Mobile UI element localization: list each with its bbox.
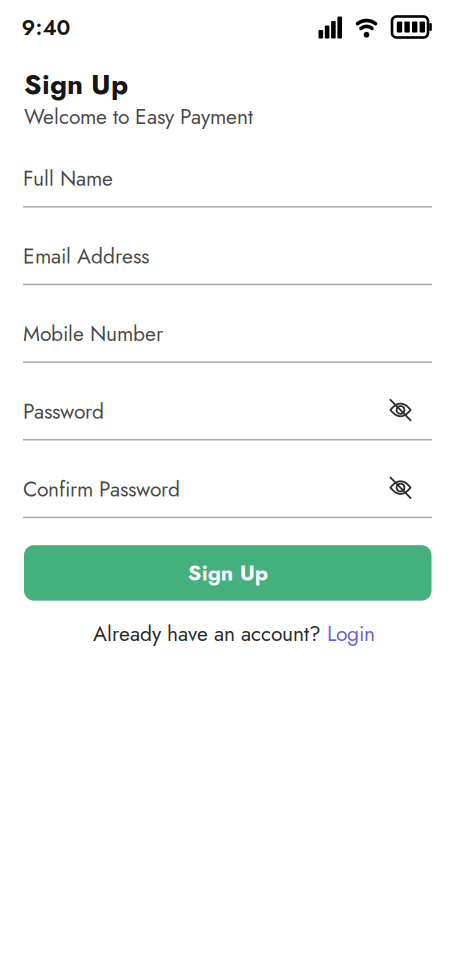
button[interactable]: Show password <box>390 401 411 422</box>
button[interactable]: Mobile Number <box>23 319 432 349</box>
staticText: Login <box>327 618 375 649</box>
button[interactable]: Login <box>327 618 375 649</box>
staticText: Welcome to Easy Payment <box>24 101 253 132</box>
staticText: Sign Up <box>24 64 128 104</box>
button[interactable]: Show confirm password <box>390 478 411 500</box>
button[interactable]: Confirm Password <box>23 474 390 504</box>
staticText: Password <box>23 396 104 427</box>
button[interactable]: Full Name <box>23 163 432 194</box>
staticText: Mobile Number <box>23 319 163 349</box>
staticText: Full Name <box>23 163 113 194</box>
staticText: Confirm Password <box>23 474 180 504</box>
button[interactable]: Sign Up <box>24 545 431 601</box>
button[interactable]: Email Address <box>23 241 432 271</box>
staticText: Sign Up <box>188 557 268 589</box>
button[interactable]: Password <box>23 396 390 427</box>
staticText: 9:40 <box>21 12 70 43</box>
staticText: Already have an account? <box>93 618 327 649</box>
staticText: Email Address <box>23 241 149 271</box>
